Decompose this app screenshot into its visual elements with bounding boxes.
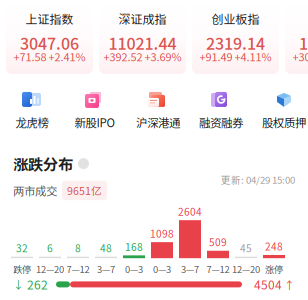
- staticText: 0—3: [125, 262, 143, 276]
- staticText: 跌停: [13, 262, 31, 276]
- staticText: 12—20: [232, 262, 260, 276]
- staticText: 8: [75, 240, 81, 255]
- staticText: 3—7: [181, 262, 199, 276]
- staticText: 上证指数: [25, 10, 73, 27]
- staticText: 创业板指: [211, 10, 259, 27]
- staticText: 248: [265, 239, 283, 253]
- staticText: 0—3: [153, 262, 171, 276]
- staticText: 新股IPO: [74, 114, 115, 130]
- staticText: 涨跌分布: [13, 152, 73, 175]
- staticText: 11021.44: [108, 31, 176, 54]
- staticText: 6: [47, 240, 53, 255]
- staticText: 45: [240, 240, 252, 255]
- staticText: ↑: [282, 277, 295, 292]
- button[interactable]: 科创50: [285, 1, 308, 74]
- button[interactable]: 沪深港通: [126, 92, 189, 130]
- staticText: 1098: [150, 226, 174, 241]
- button[interactable]: 融资融券: [189, 92, 252, 130]
- staticText: 168: [125, 239, 143, 254]
- staticText: 7—12: [66, 262, 89, 276]
- staticText: 融资融券: [199, 114, 243, 130]
- button[interactable]: 龙虎榜: [0, 92, 63, 130]
- staticText: 12—20: [36, 262, 64, 276]
- staticText: 32: [16, 240, 28, 255]
- button[interactable]: 新股IPO: [63, 92, 126, 130]
- staticText: 两市成交: [13, 182, 57, 199]
- staticText: +30.21 +3.01%: [292, 48, 308, 64]
- staticText: 更新: 04/29 15:00: [221, 172, 295, 186]
- staticText: 4504: [254, 276, 282, 293]
- staticText: +91.49 +4.11%: [199, 48, 271, 64]
- button[interactable]: 上证指数: [6, 1, 93, 74]
- staticText: 509: [209, 235, 227, 249]
- staticText: 262: [24, 276, 48, 293]
- staticText: 1024.44: [299, 31, 308, 54]
- staticText: 2604: [178, 204, 202, 219]
- button[interactable]: 深证成指: [99, 1, 186, 74]
- staticText: 深证成指: [118, 10, 166, 27]
- staticText: 股权质押: [262, 114, 306, 130]
- staticText: 7—12: [206, 262, 229, 276]
- button[interactable]: 股权质押: [252, 92, 308, 130]
- staticText: 2319.14: [206, 31, 265, 54]
- staticText: +71.58 +2.41%: [13, 48, 85, 64]
- staticText: 3047.06: [20, 31, 79, 54]
- staticText: 涨停: [265, 262, 283, 276]
- button[interactable]: 创业板指: [192, 1, 279, 74]
- staticText: +392.52 +3.69%: [103, 48, 181, 64]
- staticText: 龙虎榜: [15, 114, 48, 130]
- staticText: 沪深港通: [136, 114, 180, 130]
- staticText: 48: [100, 240, 112, 255]
- staticText: 9651亿: [67, 183, 102, 198]
- staticText: ↓: [13, 277, 24, 292]
- staticText: 3—7: [97, 262, 115, 276]
